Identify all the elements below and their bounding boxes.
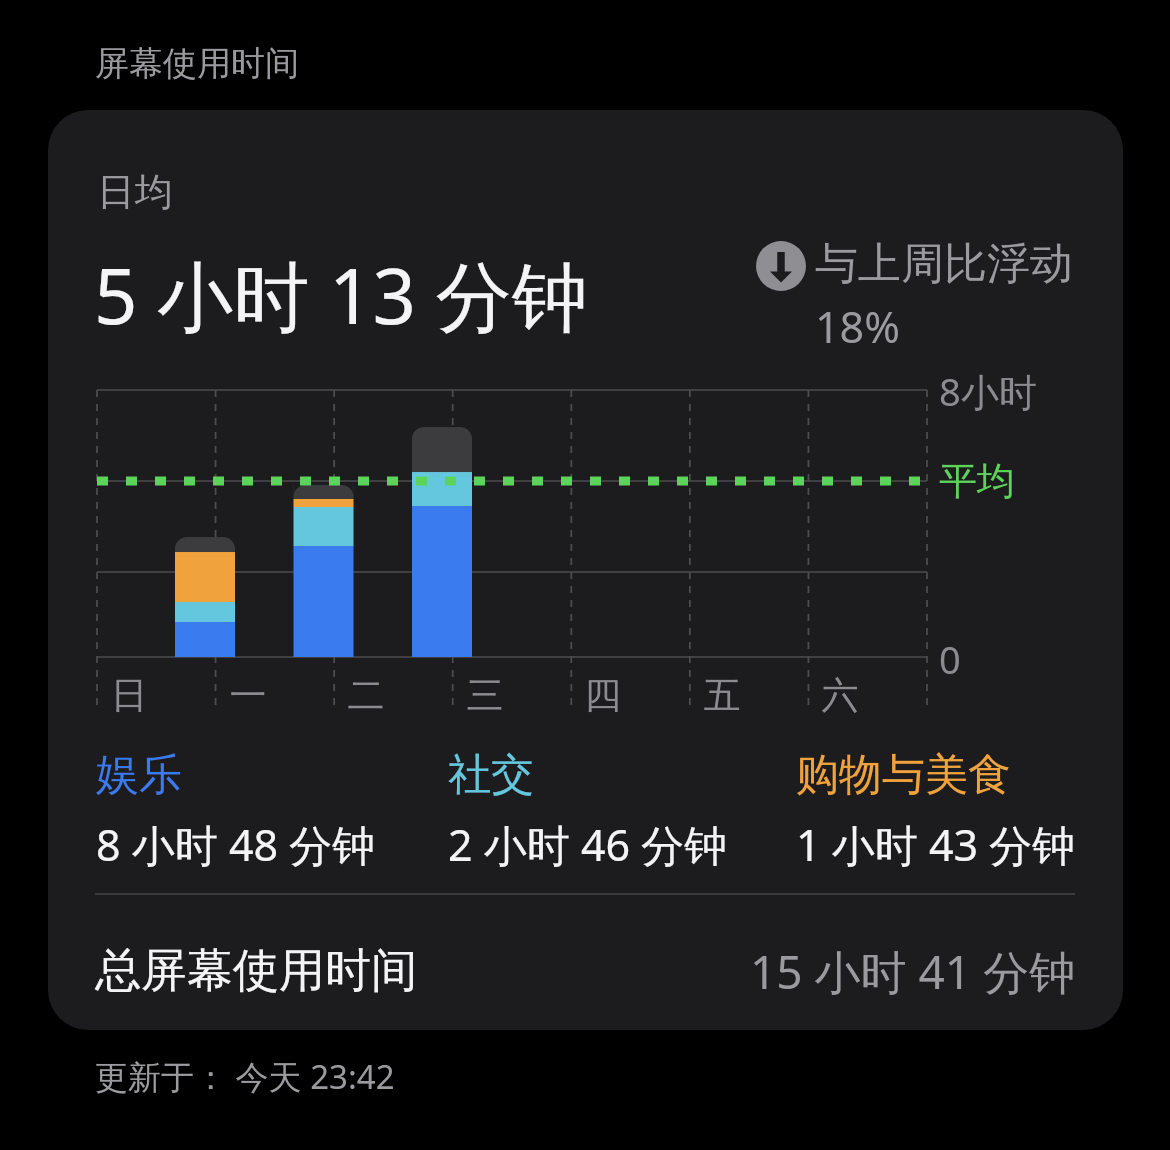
staticText: 2 小时 46 分钟 — [448, 815, 728, 874]
staticText: 购物与美食 — [796, 748, 1011, 802]
staticText: 日 — [104, 672, 154, 719]
staticText: 15 小时 41 分钟 — [750, 940, 1076, 1003]
staticText: 与上周比浮动 18% — [815, 232, 1091, 355]
staticText: 更新于： 今天 23:42 — [95, 1054, 395, 1099]
staticText: 日均 — [97, 168, 173, 216]
staticText: 五 — [697, 672, 747, 719]
staticText: 0 — [939, 633, 961, 685]
button[interactable]: 社交 — [448, 748, 783, 874]
staticText: 社交 — [448, 748, 534, 802]
staticText: 1 小时 43 分钟 — [796, 815, 1076, 874]
button[interactable]: 娱乐 — [96, 748, 431, 874]
staticText: 8 小时 48 分钟 — [96, 815, 376, 874]
other: 较上周下降 — [756, 241, 806, 291]
staticText: 总屏幕使用时间 — [95, 942, 417, 1000]
staticText: 二 — [341, 672, 391, 719]
button[interactable]: 总屏幕使用时间 — [95, 930, 1076, 1012]
staticText: 四 — [578, 672, 628, 719]
button[interactable]: 较上周下降 — [756, 232, 1091, 355]
staticText: 娱乐 — [96, 748, 182, 802]
staticText: 平均 — [939, 457, 1015, 505]
staticText: 三 — [460, 672, 510, 719]
staticText: 屏幕使用时间 — [95, 42, 299, 85]
staticText: 8小时 — [939, 365, 1037, 417]
staticText: 六 — [815, 672, 865, 719]
staticText: 一 — [223, 672, 273, 719]
button[interactable]: 日均 — [48, 110, 1123, 1030]
button[interactable]: 购物与美食 — [796, 748, 1123, 874]
staticText: 5 小时 13 分钟 — [94, 243, 588, 347]
